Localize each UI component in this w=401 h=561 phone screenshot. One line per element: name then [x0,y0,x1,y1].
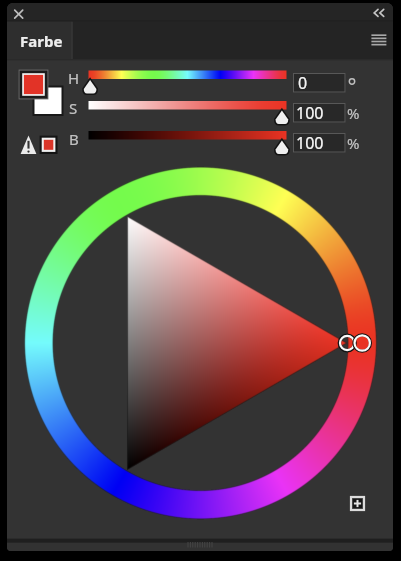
staticText: S [69,98,78,118]
button[interactable]: Collapse panel [364,5,388,21]
staticText: % [347,103,360,123]
button[interactable]: Farbe tab [7,23,73,57]
button[interactable]: Colour wheel [25,168,377,519]
button[interactable]: Saturation field 100 percent [292,103,346,125]
button[interactable]: Brightness field 100 percent [292,133,346,155]
button[interactable]: Saturation slider [88,98,288,111]
button[interactable]: In gamut color [38,134,59,155]
button[interactable]: Foreground and background colors [16,69,63,116]
staticText: 100 [296,132,324,154]
button[interactable]: Add to swatches [349,494,368,513]
staticText: 100 [296,102,324,124]
button[interactable]: Panel menu [364,28,390,50]
staticText: Farbe [20,31,63,51]
button[interactable]: Out of gamut warning [18,134,37,154]
staticText: % [347,133,360,153]
button[interactable]: Hue slider [88,68,288,81]
staticText: H [68,68,80,88]
staticText: 0 [298,72,308,94]
button[interactable]: Close panel [11,5,27,21]
button[interactable]: Hue field 0 degrees [292,73,346,95]
staticText: B [69,129,79,149]
button[interactable]: Brightness slider [88,129,288,142]
